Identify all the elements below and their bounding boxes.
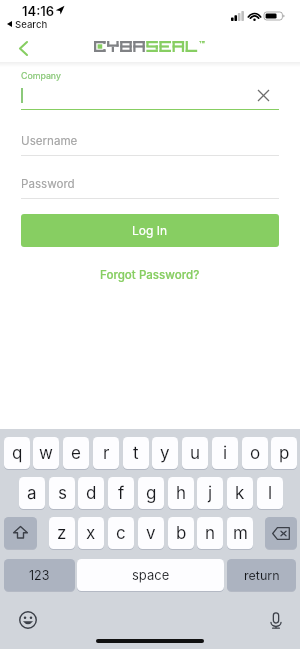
staticText: Log In [132,223,168,238]
button[interactable]: 123 [4,559,75,591]
button[interactable]: b [168,517,194,549]
button[interactable]: q [4,437,30,469]
staticText: p [279,443,290,464]
staticText: l [268,483,273,504]
staticText: s [58,483,67,504]
button[interactable]: e [63,437,89,469]
button[interactable]: o [242,437,268,469]
button[interactable]: w [33,437,59,469]
staticText: e [71,443,81,464]
button[interactable]: x [78,517,104,549]
staticText: n [205,523,216,544]
button[interactable]: t [123,437,149,469]
staticText: r [103,443,110,464]
button[interactable]: r [93,437,119,469]
button[interactable]: Emoji keyboard [16,608,40,632]
button[interactable]: p [271,437,297,469]
staticText: g [146,483,157,504]
staticText: w [39,443,53,464]
button[interactable]: Backspace [265,517,297,549]
button[interactable]: s [49,477,75,509]
button[interactable]: v [138,517,164,549]
staticText: d [86,483,97,504]
button[interactable]: n [197,517,223,549]
button[interactable]: Forgot Password? [94,266,206,284]
staticText: i [223,443,228,464]
staticText: Company [21,70,61,81]
staticText: t [133,443,139,464]
button[interactable]: Shift [4,517,37,549]
staticText: j [208,483,213,504]
button[interactable]: j [197,477,223,509]
staticText: Username [21,134,78,148]
button[interactable]: u [182,437,208,469]
staticText: o [250,443,261,464]
button[interactable]: Clear text [252,84,274,106]
button[interactable]: i [212,437,238,469]
staticText: m [233,523,248,544]
staticText: Password [21,177,75,191]
staticText: b [176,523,187,544]
staticText: u [190,443,201,464]
staticText: space [132,567,170,583]
button[interactable]: f [108,477,134,509]
button[interactable]: m [227,517,253,549]
staticText: c [116,523,126,544]
button[interactable]: Log In [21,214,279,247]
staticText: Search [15,19,48,31]
button[interactable]: h [168,477,194,509]
staticText: k [235,483,245,504]
button[interactable]: z [49,517,75,549]
staticText: Forgot Password? [100,268,200,282]
button[interactable]: d [78,477,104,509]
staticText: h [176,483,187,504]
staticText: 123 [29,568,50,583]
button[interactable]: return [227,559,296,591]
button[interactable]: l [257,477,283,509]
staticText: z [57,523,67,544]
button[interactable]: a [19,477,45,509]
staticText: v [146,523,156,544]
staticText: x [86,523,96,544]
button[interactable]: k [227,477,253,509]
button[interactable]: g [138,477,164,509]
staticText: q [12,443,23,464]
staticText: return [244,568,280,583]
staticText: 14:16 [22,3,55,19]
staticText: y [160,443,170,464]
staticText: f [118,483,125,504]
button[interactable]: space [77,559,224,591]
button[interactable]: Back [9,35,37,62]
button[interactable]: Dictation [264,608,288,632]
button[interactable]: c [108,517,134,549]
button[interactable]: y [152,437,178,469]
staticText: a [27,483,37,504]
